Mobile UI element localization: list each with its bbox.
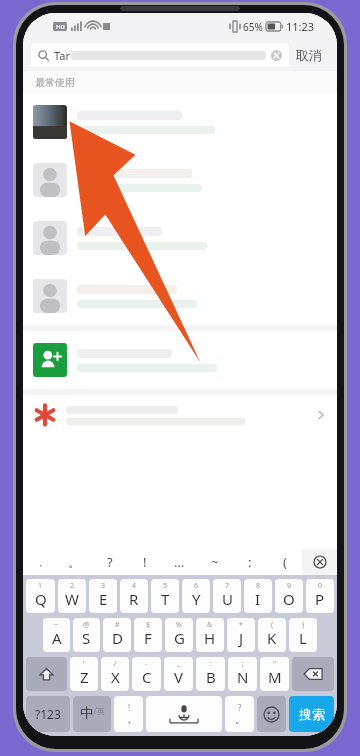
button[interactable]: ) [289,618,317,652]
button[interactable]: Emoji [257,696,286,732]
staticText: S [82,628,91,648]
staticText: ' [83,659,85,669]
button[interactable]: 5 [151,579,179,613]
button[interactable]: " [260,657,289,691]
staticText: ?123 [35,706,61,722]
staticText: Q [35,589,47,609]
staticText: 8 [256,581,261,591]
staticText: ! [143,553,147,571]
staticText: " [273,659,276,669]
staticText: # [115,620,120,630]
button[interactable]: … [162,549,197,575]
staticText: 65% [243,20,263,34]
button[interactable] [23,395,337,435]
button[interactable]: 8 [244,579,272,613]
button[interactable]: 9 [275,579,303,613]
button[interactable]: # [103,618,131,652]
staticText: 。 [235,713,245,726]
staticText: 2 [70,581,75,591]
staticText: E [99,589,108,609]
button[interactable] [23,267,337,325]
button[interactable]: $ [134,618,162,652]
button[interactable]: Backspace [292,657,334,691]
button[interactable]: ~ [43,618,70,652]
button[interactable]: Space [146,696,222,732]
staticText: U [222,589,233,609]
button[interactable]: _ [164,657,193,691]
staticText: 最常使用 [35,76,75,89]
staticText: K [267,628,277,648]
staticText: * [239,620,243,630]
staticText: 11:23 [286,19,315,34]
button[interactable]: ~ [197,549,232,575]
button[interactable]: : [232,549,267,575]
staticText: HD [56,23,65,31]
staticText: T [161,589,170,609]
staticText: ! [128,702,131,713]
staticText: /英 [94,705,105,716]
staticText: V [174,667,184,687]
button[interactable]: Shift [26,657,67,691]
button[interactable]: ! [114,696,143,732]
button[interactable]: & [196,618,224,652]
button[interactable]: Close toolbar [302,549,337,575]
button[interactable]: Tar [31,43,289,67]
button[interactable]: ? [225,696,254,732]
staticText: Y [192,589,201,609]
button[interactable]: ? [92,549,127,575]
staticText: - [145,659,148,669]
staticText: 3 [101,581,106,591]
staticText: : [210,659,212,669]
button[interactable]: 4 [120,579,148,613]
staticText: L [299,628,307,648]
button[interactable]: 7 [213,579,241,613]
staticText: _ [177,659,181,669]
button[interactable]: 1 [26,579,55,613]
staticText: 4 [132,581,137,591]
staticText: O [283,589,295,609]
button[interactable] [23,331,337,389]
button[interactable]: % [165,618,193,652]
button[interactable]: / [101,657,129,691]
button[interactable] [23,93,337,151]
button[interactable]: 取消 [289,43,329,67]
button[interactable]: @ [73,618,100,652]
button[interactable]: ?123 [26,696,70,732]
button[interactable]: 3 [89,579,117,613]
staticText: ， [124,713,134,726]
staticText: … [174,553,185,571]
button[interactable]: : [196,657,225,691]
staticText: P [315,589,325,609]
staticText: F [144,628,152,648]
button[interactable]: ( [258,618,286,652]
button[interactable]: 搜索 [289,696,334,732]
button[interactable]: - [132,657,161,691]
staticText: W [65,589,79,609]
staticText: B [206,667,216,687]
button[interactable] [23,209,337,267]
button[interactable] [23,151,337,209]
staticText: @ [83,620,90,630]
button[interactable]: 6 [182,579,210,613]
staticText: ? [238,702,242,713]
staticText: 搜索 [299,706,325,722]
staticText: H [204,628,216,648]
staticText: M [268,667,282,687]
button[interactable]: 0 [306,579,334,613]
staticText: R [129,589,139,609]
staticText: D [112,628,123,648]
button[interactable]: Clear [271,50,282,61]
staticText: 7 [225,581,230,591]
button[interactable]: ' [70,657,98,691]
staticText: ) [302,620,305,630]
staticText: Z [80,667,89,687]
staticText: I [255,589,261,609]
button[interactable]: ( [267,549,302,575]
button[interactable]: 2 [58,579,86,613]
button[interactable]: 。 [57,549,92,575]
button[interactable]: ! [127,549,162,575]
button[interactable]: * [227,618,255,652]
button[interactable]: 中 [73,696,111,732]
button[interactable]: ; [228,657,257,691]
button[interactable]: ， [23,549,57,575]
